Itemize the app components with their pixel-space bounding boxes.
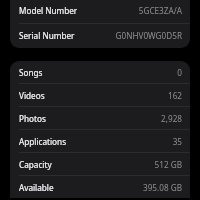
staticText: Model Number: [19, 5, 78, 16]
staticText: G0NHV0WG0D5R: [115, 30, 182, 41]
staticText: 5GCE3ZA/A: [138, 5, 182, 16]
staticText: 0: [177, 67, 182, 78]
button[interactable]: Serial Number: [10, 24, 190, 46]
staticText: 162: [167, 90, 182, 101]
button[interactable]: Model Number: [10, 0, 190, 23]
staticText: Songs: [19, 67, 43, 78]
staticText: 2,928: [161, 113, 182, 124]
button[interactable]: Available: [10, 176, 190, 198]
staticText: Photos: [19, 113, 46, 124]
staticText: Capacity: [19, 159, 52, 170]
button[interactable]: Songs: [10, 61, 190, 83]
button[interactable]: Capacity: [10, 153, 190, 175]
staticText: 395.08 GB: [142, 182, 182, 193]
staticText: 512 GB: [154, 159, 182, 170]
staticText: 35: [172, 136, 182, 147]
button[interactable]: Applications: [10, 130, 190, 152]
button[interactable]: Photos: [10, 107, 190, 129]
staticText: Available: [19, 182, 54, 193]
staticText: Serial Number: [19, 30, 75, 41]
button[interactable]: Videos: [10, 84, 190, 106]
staticText: Videos: [19, 90, 45, 101]
staticText: Applications: [19, 136, 67, 147]
